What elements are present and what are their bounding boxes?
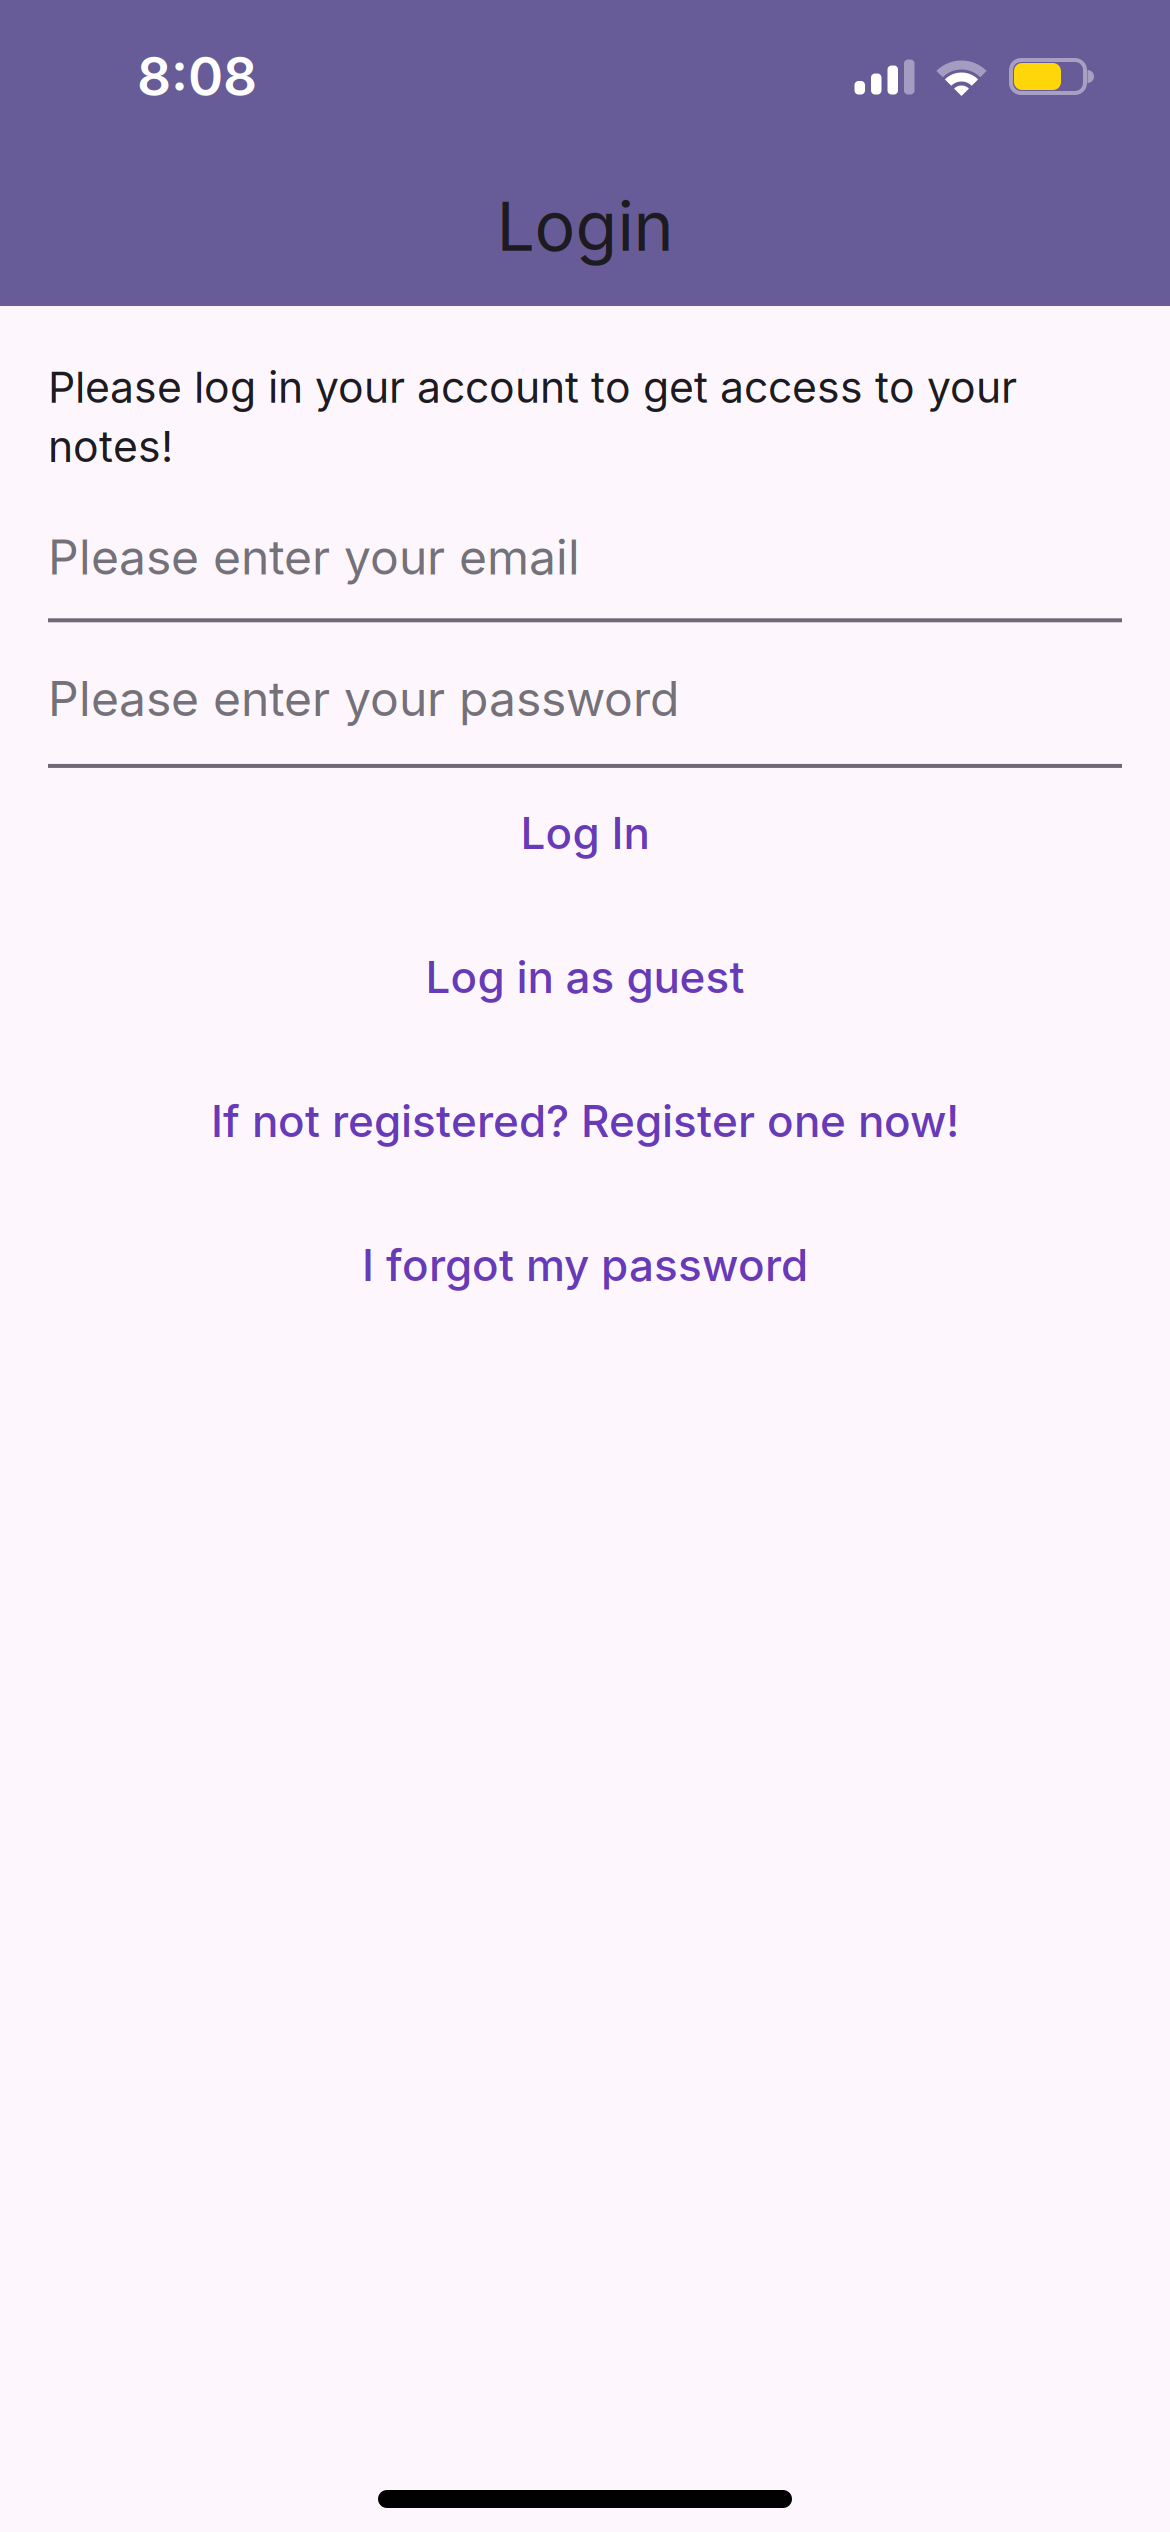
staticText: Login	[496, 186, 673, 266]
staticText: Log in as guest	[425, 951, 744, 1003]
staticText: Please log in your account to get access…	[48, 362, 1017, 472]
staticText: 8:08	[137, 45, 257, 108]
button[interactable]: Please enter your password	[48, 670, 1122, 768]
staticText: Please enter your email	[48, 529, 580, 585]
staticText: Log In	[520, 807, 649, 859]
button[interactable]: If not registered? Register one now!	[181, 1061, 989, 1181]
staticText: If not registered? Register one now!	[211, 1095, 959, 1147]
button[interactable]: Log In	[490, 773, 679, 893]
button[interactable]: Log in as guest	[395, 917, 774, 1037]
button[interactable]: Please enter your email	[48, 529, 1122, 622]
staticText: Please enter your password	[48, 670, 679, 727]
button[interactable]: I forgot my password	[332, 1205, 838, 1325]
staticText: I forgot my password	[362, 1239, 808, 1291]
